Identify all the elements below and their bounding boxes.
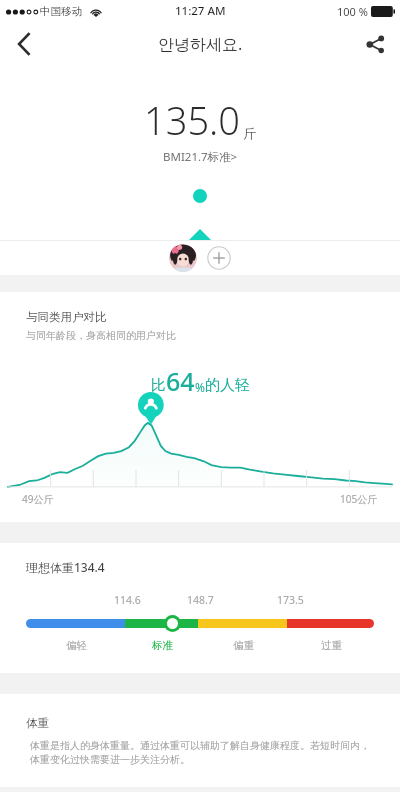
staticText: %	[195, 379, 205, 395]
staticText: 偏轻	[66, 639, 87, 652]
button[interactable]: Add member	[207, 246, 231, 270]
staticText: 173.5	[277, 593, 304, 607]
staticText: 105公斤	[340, 492, 378, 506]
staticText: 偏重	[233, 639, 254, 652]
staticText: 中国移动	[40, 5, 82, 18]
staticText: 안녕하세요.	[158, 33, 243, 55]
staticText: 148.7	[187, 593, 214, 607]
staticText: 的人轻	[205, 376, 250, 395]
staticText: BMI21.7标准>	[163, 149, 238, 165]
staticText: 100 %	[337, 4, 368, 19]
button[interactable]: Share	[350, 22, 400, 66]
staticText: 11:27 AM	[175, 3, 226, 19]
button[interactable]: Current user	[169, 244, 197, 272]
staticText: 理想体重134.4	[26, 559, 105, 575]
staticText: 斤	[243, 125, 256, 141]
staticText: 体重是指人的身体重量。通过体重可以辅助了解自身健康程度。若短时间内，体重变化过快…	[30, 739, 374, 766]
staticText: 与同类用户对比	[26, 310, 107, 324]
staticText: 与同年龄段，身高相同的用户对比	[26, 329, 176, 342]
staticText: 114.6	[114, 593, 141, 607]
button[interactable]: Back	[0, 22, 48, 66]
staticText: 体重	[26, 716, 49, 730]
staticText: 过重	[321, 639, 342, 652]
staticText: 49公斤	[22, 492, 54, 506]
button[interactable]: BMI21.7标准>	[163, 149, 238, 165]
staticText: 标准	[152, 639, 173, 652]
staticText: 135.0	[144, 94, 241, 146]
staticText: 比	[151, 376, 166, 395]
staticText: 64	[166, 364, 195, 398]
